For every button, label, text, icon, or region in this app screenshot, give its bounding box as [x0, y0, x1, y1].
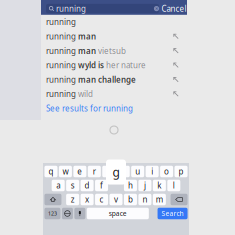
button[interactable]: h	[124, 180, 137, 191]
button[interactable]: running	[41, 72, 187, 87]
button[interactable]: j	[138, 180, 151, 191]
staticText: running	[46, 60, 78, 70]
button[interactable]: running	[41, 58, 187, 72]
staticText: z	[71, 194, 75, 205]
button[interactable]: o	[160, 166, 173, 177]
staticText: l	[173, 180, 175, 191]
button[interactable]: Clear text	[154, 6, 159, 11]
button[interactable]: running	[41, 44, 187, 58]
button[interactable]: w	[59, 166, 72, 177]
button[interactable]: running	[41, 15, 187, 29]
button[interactable]: Search	[157, 208, 187, 219]
button[interactable]	[74, 208, 85, 219]
button[interactable]: a	[52, 180, 65, 191]
button[interactable]: running	[41, 29, 187, 44]
button[interactable]: x	[81, 194, 94, 205]
staticText: running	[46, 74, 78, 85]
button[interactable]: 123	[44, 208, 60, 219]
button[interactable]: running	[41, 87, 187, 101]
button[interactable]: l	[167, 180, 180, 191]
staticText: e	[77, 166, 82, 177]
staticText: c	[99, 194, 103, 205]
staticText: i	[151, 166, 153, 177]
staticText: man challenge	[78, 74, 136, 85]
button[interactable]: See results for running	[41, 101, 187, 116]
staticText: p	[178, 166, 183, 177]
staticText: v	[114, 194, 118, 205]
button[interactable]: i	[146, 166, 159, 177]
button[interactable]: k	[153, 180, 166, 191]
staticText: Search	[161, 209, 183, 218]
staticText: o	[164, 166, 169, 177]
button[interactable]: n	[138, 194, 151, 205]
staticText: 123	[48, 210, 57, 217]
button[interactable]: t	[102, 166, 115, 177]
staticText: g	[112, 164, 119, 180]
button[interactable]: f	[95, 180, 108, 191]
button[interactable]	[62, 208, 73, 219]
staticText: running	[46, 45, 78, 56]
staticText: man	[78, 45, 96, 56]
staticText: f	[100, 180, 103, 191]
staticText: g	[113, 180, 118, 191]
staticText: n	[142, 194, 147, 205]
staticText: running	[56, 3, 86, 14]
button[interactable]	[44, 194, 61, 205]
button[interactable]: m	[153, 194, 166, 205]
staticText: See results for running	[46, 103, 133, 114]
staticText: her nature	[104, 60, 146, 70]
button[interactable]	[170, 194, 187, 205]
staticText: a	[56, 180, 60, 191]
staticText: b	[128, 194, 133, 205]
button[interactable]: p	[174, 166, 187, 177]
staticText: w	[62, 166, 68, 177]
staticText: k	[157, 180, 161, 191]
staticText: u	[135, 166, 140, 177]
button[interactable]: v	[109, 194, 122, 205]
staticText: r	[93, 166, 96, 177]
staticText: h	[128, 180, 133, 191]
staticText: running	[46, 89, 76, 99]
staticText: j	[144, 180, 146, 191]
button[interactable]: Cancel	[161, 3, 186, 14]
staticText: x	[85, 194, 89, 205]
button[interactable]: y	[117, 166, 130, 177]
button[interactable]: c	[95, 194, 108, 205]
button[interactable]: z	[66, 194, 79, 205]
button[interactable]: e	[73, 166, 86, 177]
button[interactable]: q	[44, 166, 57, 177]
staticText: d	[85, 180, 90, 191]
staticText: Cancel	[161, 3, 186, 14]
staticText: wyld is	[78, 60, 104, 70]
button[interactable]: space	[87, 208, 149, 219]
staticText: running	[46, 31, 78, 42]
staticText: s	[71, 180, 75, 191]
button[interactable]: r	[88, 166, 101, 177]
button[interactable]: u	[131, 166, 144, 177]
staticText: man	[78, 31, 96, 42]
button[interactable]: b	[124, 194, 137, 205]
staticText: m	[156, 194, 163, 205]
staticText: space	[109, 209, 127, 218]
button[interactable]: g	[109, 180, 122, 191]
staticText: q	[48, 166, 53, 177]
staticText: wild	[76, 89, 93, 99]
button[interactable]: d	[81, 180, 94, 191]
staticText: vietsub	[96, 45, 126, 56]
staticText: ✕	[155, 6, 158, 11]
button[interactable]: s	[66, 180, 79, 191]
staticText: running	[46, 17, 76, 27]
